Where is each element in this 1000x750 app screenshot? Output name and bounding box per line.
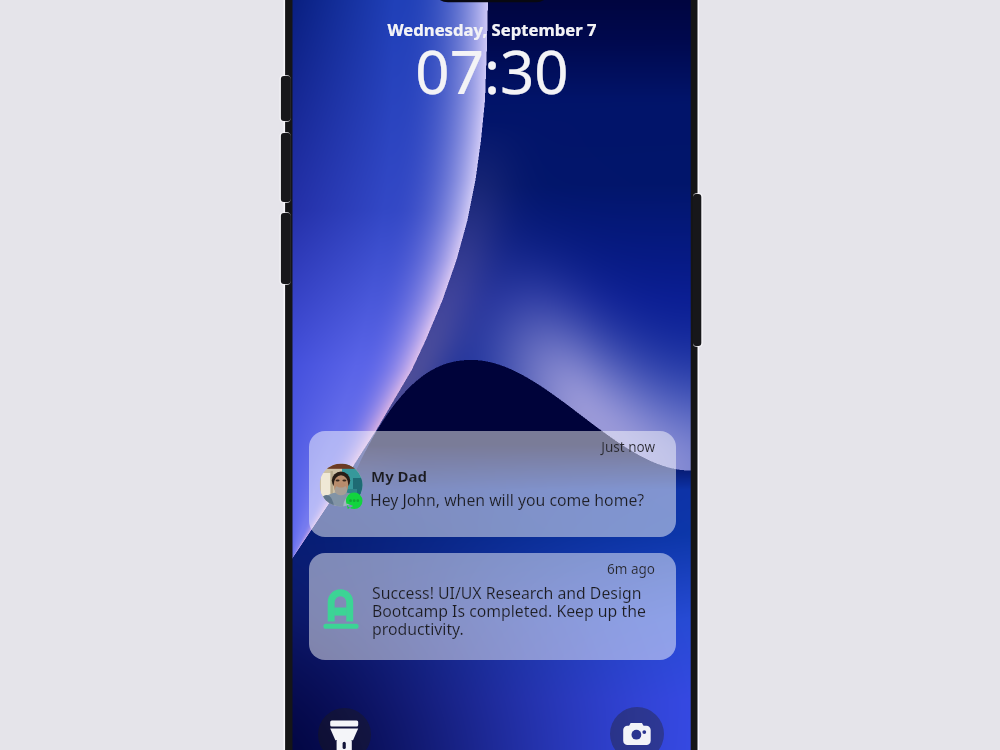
staticText: My Dad: [371, 466, 428, 486]
staticText: 6m ago: [309, 560, 655, 660]
staticText: Hey John, when will you come home?: [370, 489, 645, 511]
staticText: Success! UI/UX Research and Design Bootc…: [372, 582, 646, 640]
staticText: 07:30: [293, 30, 691, 750]
staticText: Just now: [309, 438, 655, 537]
button[interactable]: Camera: [610, 707, 664, 750]
button[interactable]: Just now: [309, 431, 676, 537]
button[interactable]: Flashlight: [318, 708, 371, 750]
button[interactable]: 6m ago: [309, 553, 676, 660]
staticText: Wednesday, September 7: [293, 18, 691, 750]
